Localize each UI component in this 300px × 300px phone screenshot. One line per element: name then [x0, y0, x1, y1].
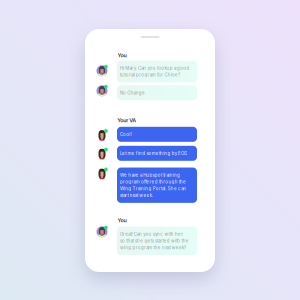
button[interactable]: Cool!	[117, 127, 197, 142]
staticText: We have a Hubspot training	[120, 172, 180, 178]
staticText: Your VA	[117, 117, 136, 124]
staticText: You	[117, 52, 126, 58]
staticText: You	[117, 217, 126, 223]
staticText: wing program the next week?	[120, 245, 186, 250]
staticText: start next week.	[120, 193, 153, 198]
staticText: so that she gets started with the	[120, 238, 189, 243]
staticText: Hi Mary. Can you lookup a good	[120, 65, 189, 71]
button[interactable]: Let me find something by EOD	[117, 146, 197, 161]
button[interactable]: Great! Can you sync with her	[117, 226, 197, 255]
staticText: program offered through the	[120, 179, 186, 184]
button[interactable]: Hi Mary. Can you lookup a good	[117, 61, 197, 82]
staticText: Great! Can you sync with her	[120, 231, 183, 237]
button[interactable]: No Change	[117, 85, 197, 100]
staticText: Wing Training Portal. She can	[120, 186, 186, 191]
staticText: Let me find something by EOD	[120, 151, 187, 156]
button[interactable]: We have a Hubspot training	[117, 167, 197, 203]
staticText: No Change	[120, 90, 145, 95]
staticText: Cool!	[120, 132, 131, 137]
staticText: tutorial program for Chloe?	[120, 72, 180, 77]
